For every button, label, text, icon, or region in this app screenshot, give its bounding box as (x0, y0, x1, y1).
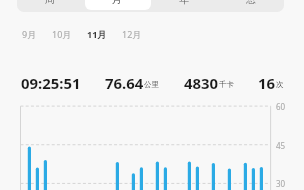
staticText: 60 (276, 101, 286, 112)
staticText: 12月 (122, 28, 142, 40)
staticText: 月 (112, 0, 122, 6)
staticText: 年 (179, 0, 189, 6)
staticText: 11月 (87, 28, 107, 40)
button[interactable]: 年 (150, 0, 217, 12)
staticText: 千卡 (219, 80, 234, 89)
button[interactable]: 10月 (52, 26, 72, 42)
button[interactable]: 11月 (87, 26, 107, 42)
button[interactable]: 总 (217, 0, 284, 12)
staticText: 公里 (144, 80, 159, 89)
staticText: 次 (276, 80, 284, 89)
staticText: 76.64 (105, 73, 144, 93)
staticText: 45 (276, 140, 286, 151)
button[interactable]: 月 (83, 0, 150, 12)
staticText: 16 (258, 73, 276, 93)
staticText: 周 (45, 0, 55, 6)
staticText: 10月 (52, 28, 72, 40)
button[interactable]: 12月 (122, 26, 142, 42)
button[interactable]: 9月 (22, 26, 37, 42)
staticText: 09:25:51 (21, 73, 81, 93)
staticText: 4830 (184, 73, 219, 93)
button[interactable]: 周 (17, 0, 83, 12)
staticText: 总 (246, 0, 256, 6)
staticText: 9月 (22, 28, 37, 40)
staticText: 30 (276, 178, 286, 189)
